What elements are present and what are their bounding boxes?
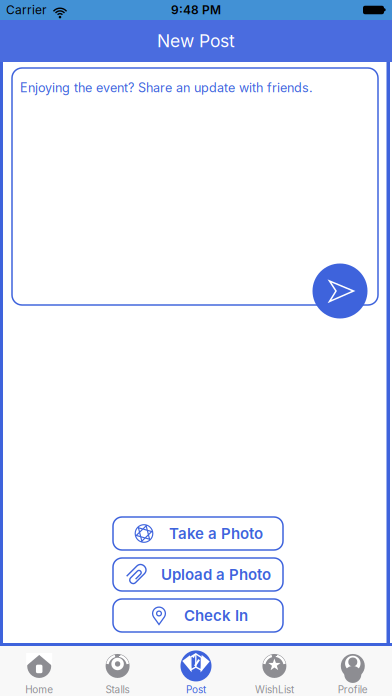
- staticText: Post: [186, 683, 206, 696]
- button[interactable]: Take a Photo: [113, 517, 283, 550]
- button[interactable]: Check In: [113, 599, 283, 632]
- staticText: Profile: [338, 683, 368, 696]
- button[interactable]: WishList: [235, 646, 314, 696]
- staticText: Upload a Photo: [161, 565, 271, 583]
- staticText: Enjoying the event? Share an update with…: [20, 80, 313, 95]
- staticText: WishList: [255, 683, 294, 696]
- button[interactable]: Send: [312, 263, 367, 318]
- staticText: Home: [25, 683, 53, 696]
- button[interactable]: Post: [157, 646, 235, 696]
- staticText: Stalls: [106, 683, 130, 696]
- button[interactable]: Home: [0, 646, 78, 696]
- button[interactable]: Upload a Photo: [113, 558, 283, 591]
- staticText: Take a Photo: [169, 524, 263, 542]
- button[interactable]: Profile: [314, 646, 392, 696]
- staticText: New Post: [157, 30, 235, 52]
- button[interactable]: Stalls: [78, 646, 157, 696]
- staticText: Check In: [184, 606, 248, 624]
- staticText: Carrier: [6, 3, 47, 17]
- staticText: 9:48 PM: [171, 3, 221, 17]
